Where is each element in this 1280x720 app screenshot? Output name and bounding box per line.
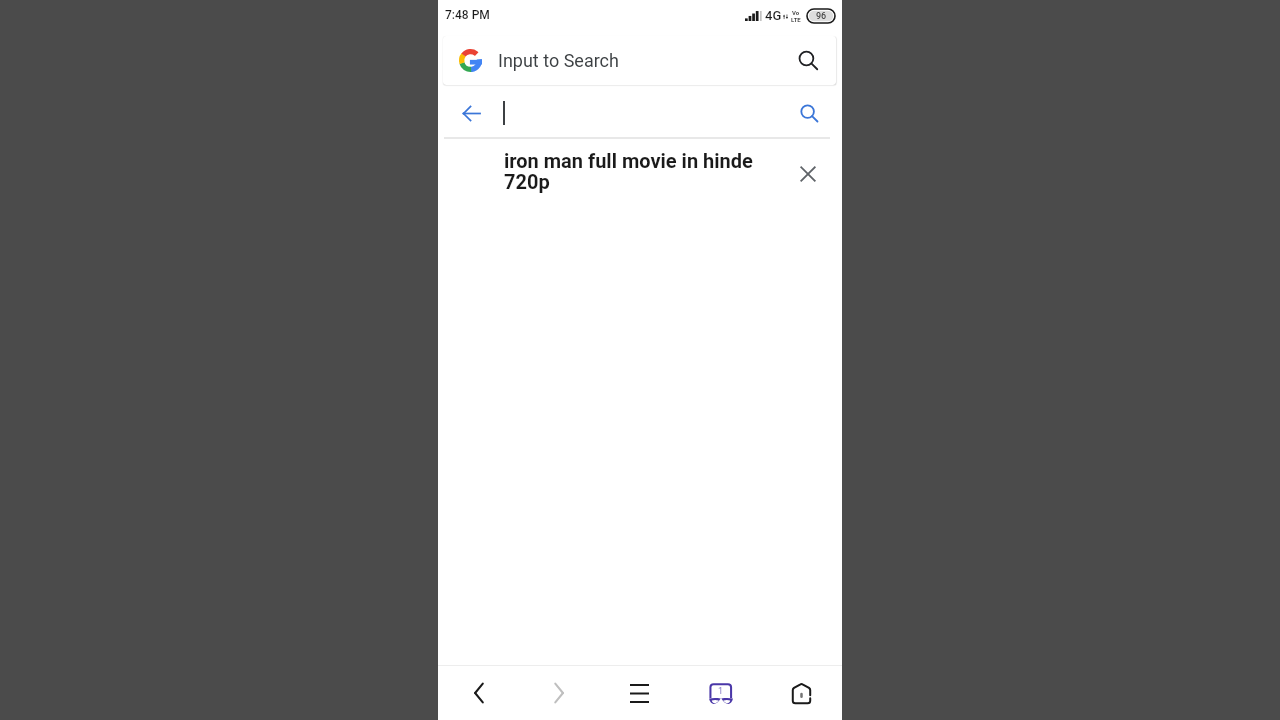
button[interactable]: iron man full movie in hinde 720p xyxy=(438,139,842,204)
button[interactable]: Back xyxy=(457,99,485,127)
button[interactable]: Back xyxy=(438,666,518,720)
button[interactable]: Home xyxy=(761,666,842,720)
button[interactable]: Search xyxy=(795,99,823,127)
button[interactable]: Remove suggestion xyxy=(794,160,822,188)
staticText: Vo xyxy=(792,9,800,16)
staticText: 96 xyxy=(816,11,827,22)
staticText: Input to Search xyxy=(498,50,619,71)
staticText: 4G xyxy=(765,8,782,23)
staticText: 7:48 PM xyxy=(445,8,490,22)
staticText: iron man full movie in hinde 720p xyxy=(504,149,770,194)
button[interactable]: Forward xyxy=(518,666,599,720)
button[interactable]: Tabs xyxy=(680,666,761,720)
button[interactable]: Menu xyxy=(599,666,680,720)
staticText: 1 xyxy=(718,686,724,697)
button[interactable]: Input to Search xyxy=(443,36,836,85)
staticText: LTE xyxy=(791,16,801,23)
